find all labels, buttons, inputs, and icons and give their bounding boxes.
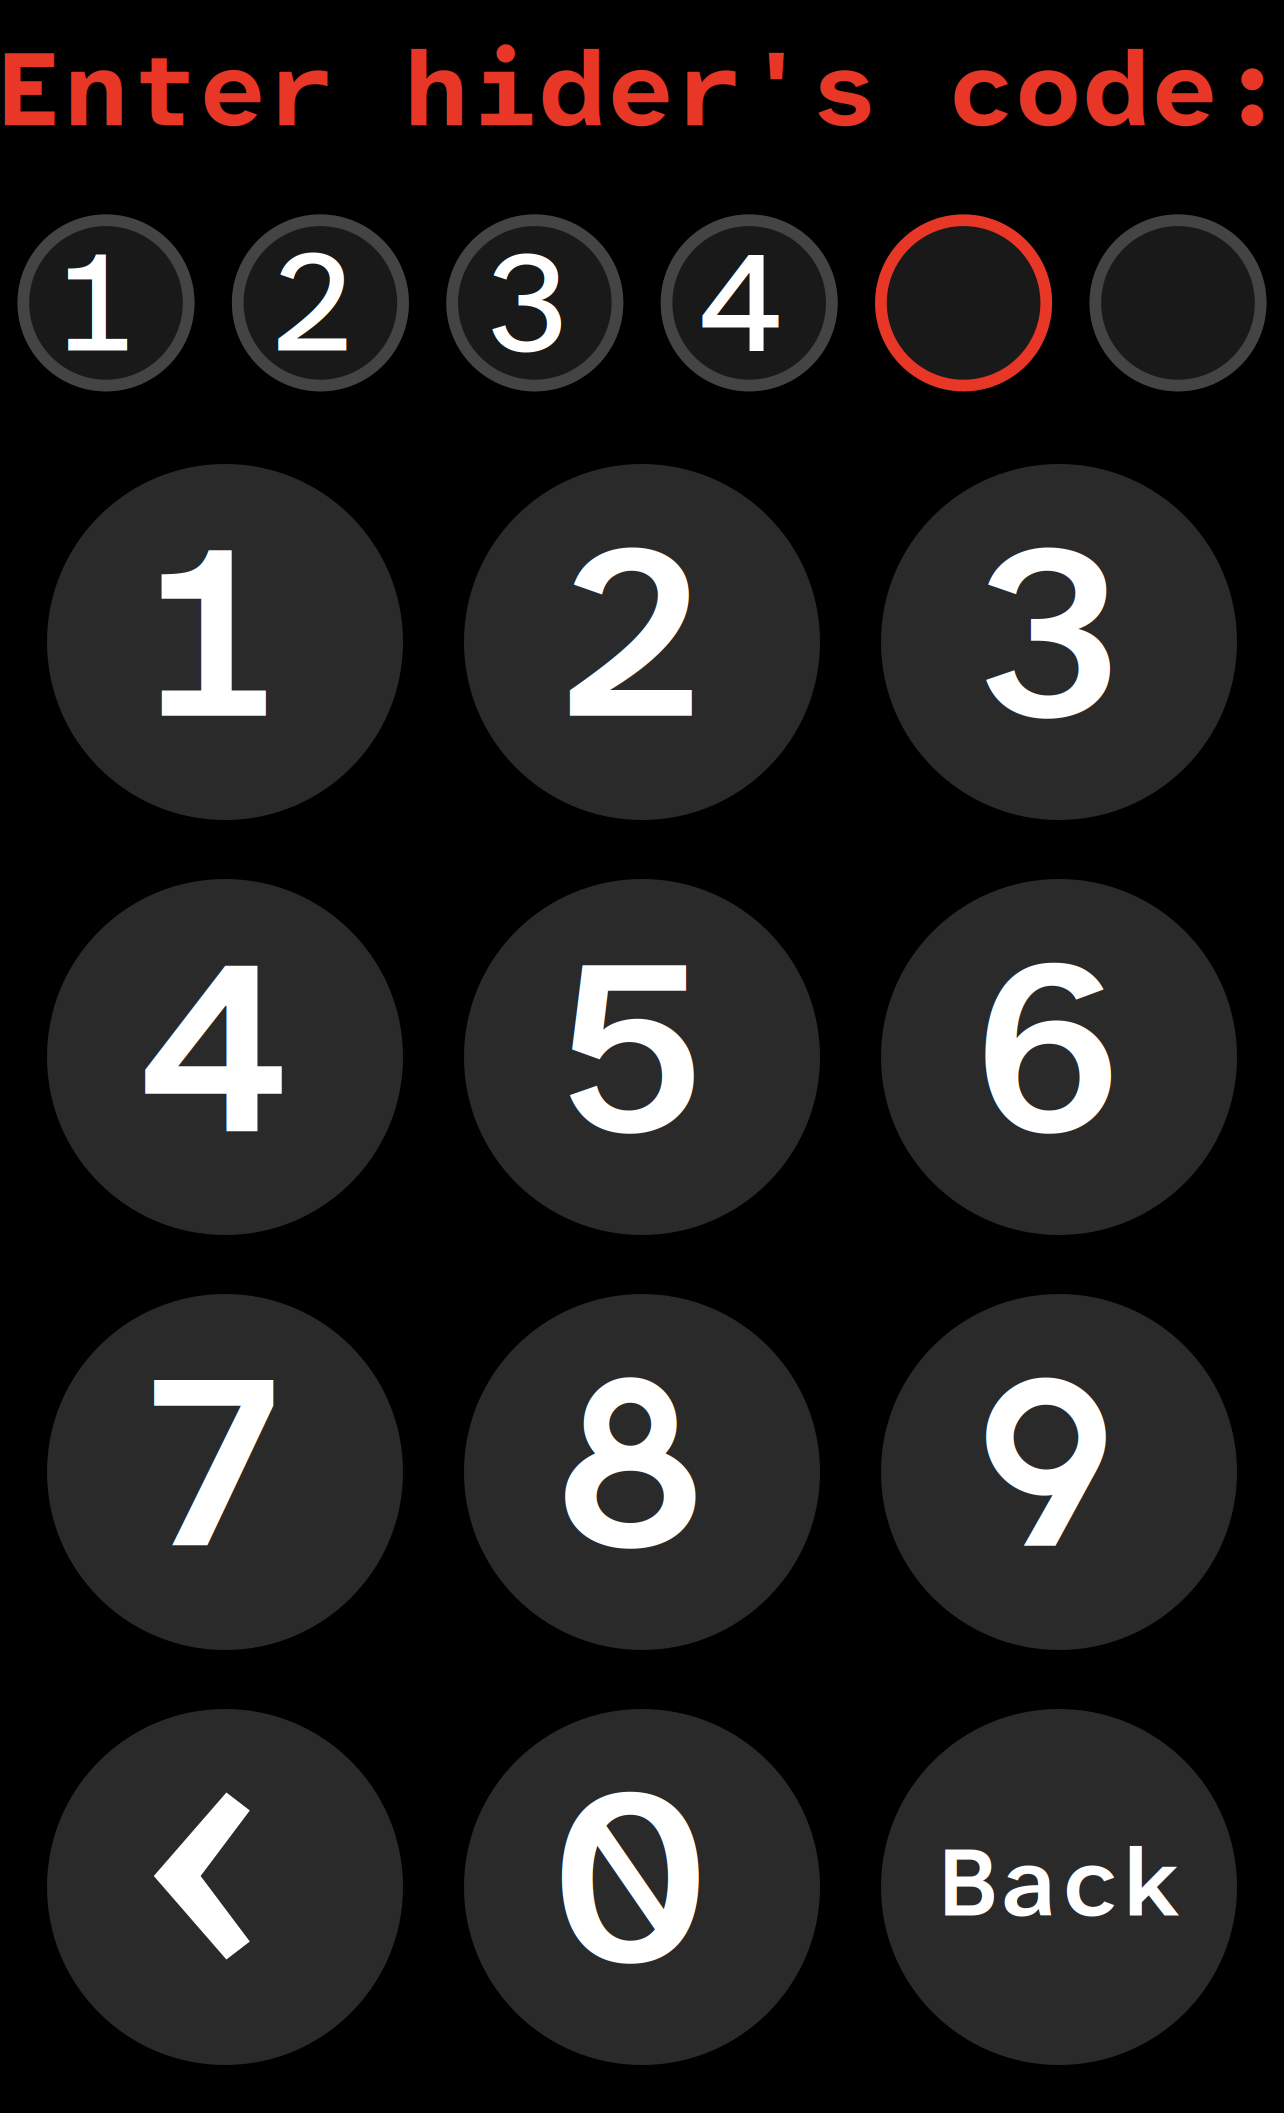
button[interactable]: 1 <box>47 464 403 820</box>
staticText: 9 <box>969 1302 1126 1624</box>
staticText: 4 <box>695 210 785 396</box>
staticText: 3 <box>969 472 1126 794</box>
staticText: 5 <box>552 887 709 1209</box>
staticText: 1 <box>135 472 292 794</box>
button[interactable]: 7 <box>47 1294 403 1650</box>
button[interactable]: 8 <box>464 1294 820 1650</box>
staticText: 2 <box>266 210 356 396</box>
button[interactable]: 5 <box>464 879 820 1235</box>
button[interactable]: 3 <box>881 464 1237 820</box>
staticText: 3 <box>481 210 571 396</box>
staticText: Enter hider's code: <box>0 19 1284 159</box>
button[interactable]: Back <box>881 1709 1237 2065</box>
staticText: 2 <box>552 472 709 794</box>
button[interactable]: 0 <box>464 1709 820 2065</box>
staticText: Back <box>937 1820 1181 1946</box>
staticText: 0 <box>552 1717 709 2039</box>
staticText: 7 <box>135 1302 292 1624</box>
staticText: 1 <box>52 210 142 396</box>
staticText: 8 <box>552 1302 709 1624</box>
button[interactable]: 9 <box>881 1294 1237 1650</box>
button[interactable]: 4 <box>47 879 403 1235</box>
staticText: 4 <box>135 887 292 1209</box>
button[interactable]: 2 <box>464 464 820 820</box>
button[interactable]: Delete <box>47 1709 403 2065</box>
button[interactable]: 6 <box>881 879 1237 1235</box>
staticText: 6 <box>969 887 1126 1209</box>
